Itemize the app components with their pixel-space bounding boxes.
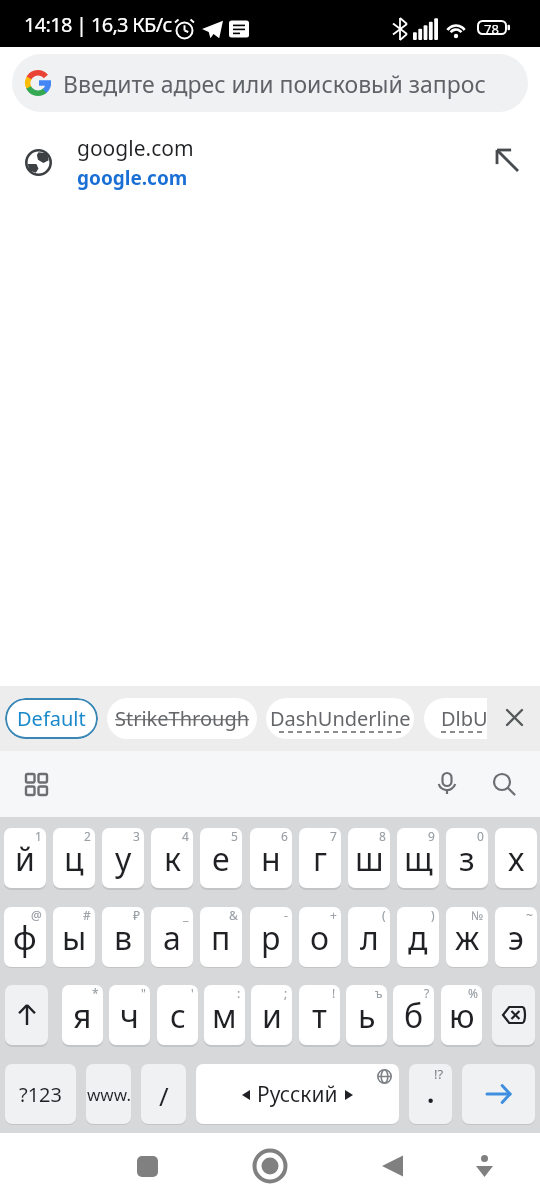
staticText: ъ [375, 985, 383, 1001]
button[interactable]: к [151, 828, 193, 888]
button[interactable]: с [157, 985, 198, 1045]
button[interactable]: Русский [196, 1064, 399, 1124]
button[interactable]: ь [346, 985, 387, 1045]
staticText: google.com [77, 165, 188, 191]
staticText: ? [424, 985, 430, 1001]
button[interactable]: / [141, 1064, 186, 1124]
staticText: б [404, 994, 424, 1038]
button[interactable] [494, 697, 534, 737]
button[interactable]: й [4, 828, 46, 888]
staticText: Введите адрес или поисковый запрос [63, 68, 486, 99]
staticText: й [15, 837, 35, 881]
button[interactable]: г [299, 828, 341, 888]
staticText: ~ [526, 907, 533, 923]
button[interactable]: э [495, 907, 537, 967]
staticText: . [427, 1075, 435, 1110]
staticText: DlbU [441, 705, 487, 732]
staticText: ( [382, 907, 386, 923]
button[interactable]: и [251, 985, 292, 1045]
button[interactable]: х [495, 828, 537, 888]
button[interactable] [492, 985, 535, 1045]
button[interactable]: DashUnderline [266, 698, 414, 739]
button[interactable] [484, 764, 524, 804]
staticText: № [471, 907, 484, 923]
button[interactable]: е [200, 828, 242, 888]
staticText: а [163, 916, 181, 960]
staticText: з [459, 837, 475, 881]
button[interactable]: п [200, 907, 242, 967]
staticText: ' [191, 985, 194, 1001]
button[interactable] [427, 764, 467, 804]
button[interactable]: . [409, 1064, 452, 1124]
button[interactable]: ы [53, 907, 95, 967]
staticText: # [83, 907, 91, 923]
staticText: & [229, 907, 238, 923]
staticText: 2 [84, 828, 91, 844]
button[interactable]: щ [397, 828, 439, 888]
staticText: " [141, 985, 146, 1001]
staticText: 78 [484, 20, 499, 38]
button[interactable]: ф [4, 907, 46, 967]
button[interactable]: DlbU [424, 698, 487, 739]
staticText: / [159, 1078, 169, 1113]
button[interactable] [249, 1145, 291, 1187]
button[interactable]: ч [109, 985, 150, 1045]
staticText: Русский [257, 1080, 338, 1109]
staticText: Default [17, 705, 86, 732]
staticText: ц [64, 837, 84, 881]
staticText: в [114, 916, 133, 960]
staticText: п [211, 916, 231, 960]
staticText: с [170, 994, 186, 1038]
button[interactable]: у [102, 828, 144, 888]
staticText: 4 [182, 828, 189, 844]
button[interactable]: ?123 [5, 1064, 76, 1124]
staticText: ы [62, 916, 87, 960]
button[interactable]: б [393, 985, 434, 1045]
button[interactable] [16, 764, 56, 804]
button[interactable]: ц [53, 828, 95, 888]
button[interactable]: з [446, 828, 488, 888]
button[interactable]: в [102, 907, 144, 967]
button[interactable]: м [204, 985, 245, 1045]
button[interactable]: Default [5, 698, 98, 739]
button[interactable]: Введите адрес или поисковый запрос [12, 54, 528, 112]
button[interactable]: я [62, 985, 103, 1045]
button[interactable]: о [299, 907, 341, 967]
staticText: @ [31, 907, 42, 923]
button[interactable]: ш [348, 828, 390, 888]
button[interactable] [126, 1145, 168, 1187]
button[interactable]: google.com [0, 126, 540, 200]
button[interactable] [462, 1064, 535, 1124]
button[interactable]: StrikeThrough [107, 698, 257, 739]
staticText: 1 [35, 828, 42, 844]
staticText: ь [358, 994, 376, 1038]
staticText: ю [449, 994, 475, 1038]
staticText: % [468, 985, 478, 1001]
button[interactable]: а [151, 907, 193, 967]
staticText: и [262, 994, 282, 1038]
button[interactable]: р [250, 907, 292, 967]
button[interactable]: ю [441, 985, 482, 1045]
staticText: StrikeThrough [115, 705, 250, 732]
button[interactable]: ж [446, 907, 488, 967]
staticText: я [73, 994, 92, 1038]
button[interactable]: www. [86, 1064, 131, 1124]
staticText: ! [332, 985, 336, 1001]
staticText: 3 [133, 828, 140, 844]
button[interactable]: л [348, 907, 390, 967]
button[interactable]: т [299, 985, 340, 1045]
button[interactable]: н [250, 828, 292, 888]
staticText: ф [13, 916, 37, 960]
button[interactable] [5, 985, 48, 1045]
staticText: х [508, 837, 525, 881]
staticText: 8 [379, 828, 386, 844]
staticText: * [92, 985, 99, 1001]
staticText: к [164, 837, 181, 881]
staticText: э [508, 916, 524, 960]
staticText: !? [434, 1065, 444, 1083]
button[interactable]: д [397, 907, 439, 967]
staticText: ж [455, 916, 480, 960]
staticText: - [284, 907, 288, 923]
button[interactable] [371, 1145, 413, 1187]
button[interactable] [463, 1145, 505, 1187]
